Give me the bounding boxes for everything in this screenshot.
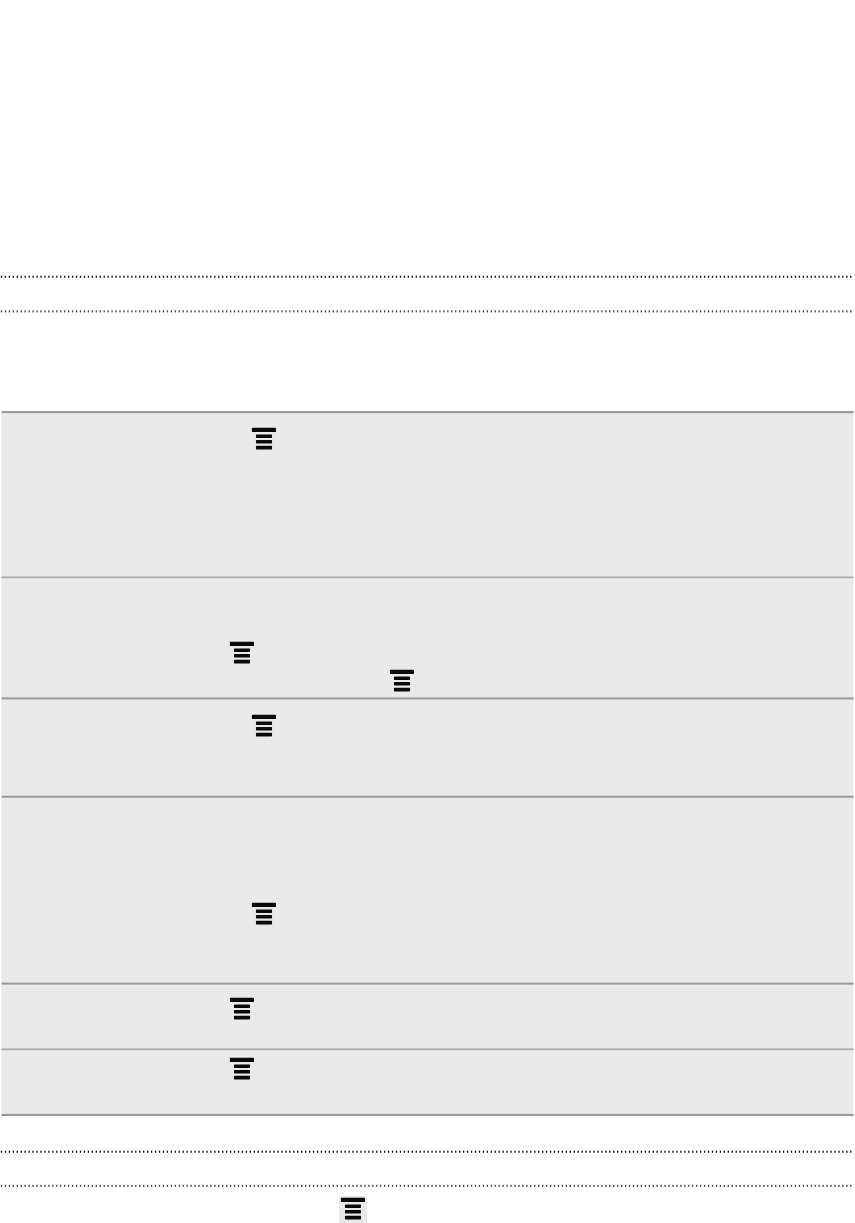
- button[interactable]: Format alignment: [250, 426, 278, 454]
- button[interactable]: Format alignment action: [339, 1196, 367, 1223]
- button[interactable]: Format alignment: [250, 713, 278, 741]
- button[interactable]: Format alignment: [228, 1056, 256, 1084]
- button[interactable]: List item 5: [0, 984, 855, 1048]
- button[interactable]: List item 1: [0, 413, 855, 576]
- button[interactable]: List item 3: [0, 699, 855, 795]
- button[interactable]: Format alignment: [388, 668, 416, 696]
- button[interactable]: Format alignment: [228, 996, 256, 1024]
- button[interactable]: Format alignment: [250, 901, 278, 929]
- button[interactable]: List item 6: [0, 1050, 855, 1114]
- button[interactable]: List item 2: [0, 578, 855, 697]
- button[interactable]: List item 4: [0, 797, 855, 982]
- button[interactable]: Format alignment: [228, 640, 256, 668]
